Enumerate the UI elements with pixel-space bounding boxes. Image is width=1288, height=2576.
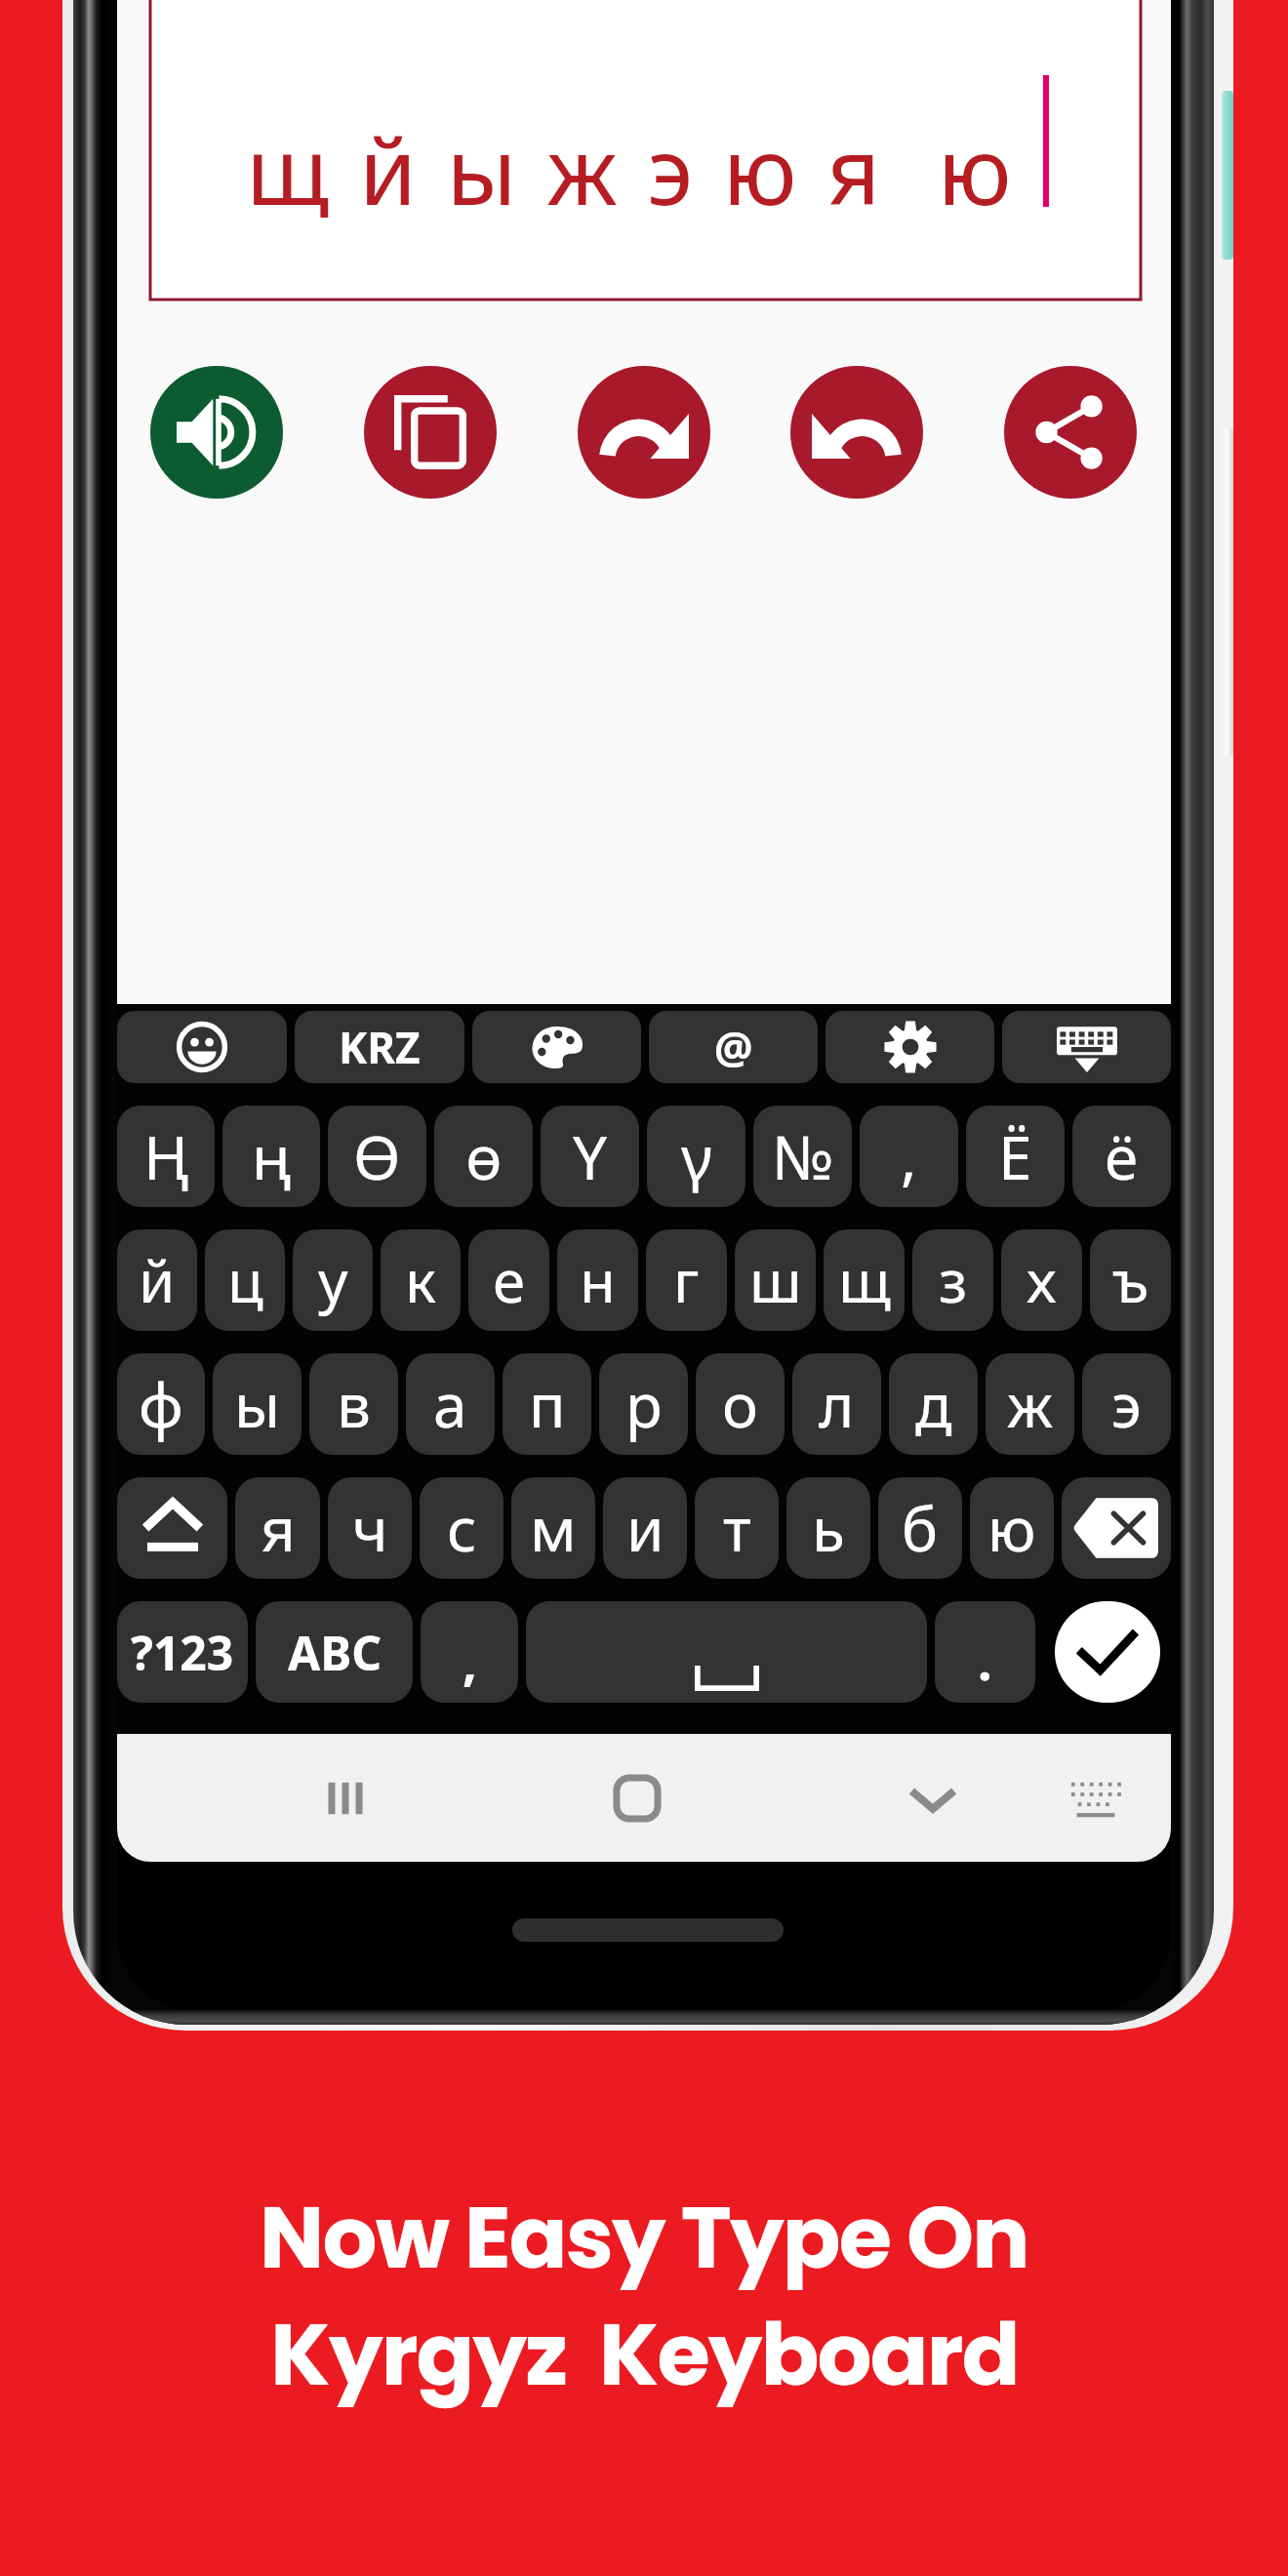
button[interactable]: ь (786, 1477, 870, 1579)
button[interactable]: Share (1004, 366, 1137, 499)
button[interactable]: Ң (117, 1106, 215, 1207)
button[interactable]: , (860, 1106, 958, 1207)
button[interactable]: ɵ (434, 1106, 533, 1207)
button[interactable]: м (511, 1477, 595, 1579)
button[interactable]: ъ (1090, 1229, 1171, 1331)
staticText: и (626, 1487, 664, 1569)
button[interactable]: Home (584, 1738, 691, 1858)
staticText: ю (987, 1487, 1036, 1569)
staticText: KRZ (339, 1018, 421, 1076)
button[interactable]: г (646, 1229, 727, 1331)
button[interactable]: д (889, 1353, 978, 1455)
button[interactable]: ф (117, 1353, 205, 1455)
button[interactable]: ы (213, 1353, 302, 1455)
button[interactable]: х (1001, 1229, 1082, 1331)
button[interactable]: ё (1072, 1106, 1171, 1207)
staticText: о (722, 1363, 758, 1445)
staticText: я (261, 1487, 296, 1569)
staticText: а (433, 1363, 467, 1445)
staticText: р (625, 1363, 663, 1445)
staticText: щ й ы ж э ю я ю (246, 105, 1015, 231)
button[interactable]: ч (328, 1477, 412, 1579)
button[interactable]: ?123 (117, 1601, 248, 1703)
button[interactable]: п (503, 1353, 591, 1455)
button[interactable]: Y (541, 1106, 639, 1207)
button[interactable]: к (381, 1229, 461, 1331)
staticText: й (139, 1240, 176, 1320)
staticText: к (405, 1240, 436, 1320)
button[interactable]: о (696, 1353, 785, 1455)
button[interactable]: з (912, 1229, 993, 1331)
staticText: б (902, 1487, 939, 1569)
button[interactable]: Redo (578, 366, 710, 499)
button[interactable]: н (557, 1229, 638, 1331)
button[interactable]: Change keyboard (1042, 1738, 1149, 1858)
staticText: Ң (143, 1115, 189, 1197)
staticText: Ё (998, 1115, 1032, 1197)
button[interactable]: ң (222, 1106, 320, 1207)
button[interactable]: Hide keyboard (1002, 1011, 1171, 1083)
staticText: л (819, 1363, 855, 1445)
button[interactable]: Enter (1055, 1601, 1160, 1703)
button[interactable]: № (753, 1106, 852, 1207)
button[interactable]: Copy (364, 366, 497, 499)
staticText: Now Easy Type On (260, 2178, 1028, 2298)
button[interactable]: Themes (472, 1011, 641, 1083)
button[interactable]: Backspace (1062, 1477, 1171, 1579)
staticText: ш (749, 1240, 802, 1320)
button[interactable]: ю (970, 1477, 1054, 1579)
staticText: ABC (288, 1621, 382, 1684)
button[interactable]: й (117, 1229, 197, 1331)
button[interactable]: γ (647, 1106, 745, 1207)
staticText: г (673, 1240, 700, 1320)
staticText: . (978, 1626, 992, 1695)
button[interactable]: б (878, 1477, 962, 1579)
staticText: ё (1105, 1115, 1139, 1197)
button[interactable]: Ɵ (328, 1106, 426, 1207)
button[interactable]: щ (824, 1229, 905, 1331)
button[interactable]: Settings (825, 1011, 994, 1083)
button[interactable]: э (1082, 1353, 1171, 1455)
staticText: γ (681, 1115, 712, 1197)
button[interactable]: KRZ (295, 1011, 464, 1083)
button[interactable]: с (420, 1477, 503, 1579)
button[interactable]: р (599, 1353, 688, 1455)
button[interactable]: Shift (117, 1477, 227, 1579)
button[interactable]: ц (205, 1229, 285, 1331)
button[interactable]: . (935, 1601, 1035, 1703)
staticText: Ɵ (353, 1115, 401, 1197)
staticText: д (915, 1363, 952, 1445)
button[interactable]: Speak (150, 366, 283, 499)
button[interactable]: Emoji (117, 1011, 287, 1083)
staticText: т (723, 1487, 751, 1569)
button[interactable]: @ (649, 1011, 818, 1083)
button[interactable]: Ё (966, 1106, 1065, 1207)
staticText: п (529, 1363, 566, 1445)
button[interactable]: у (293, 1229, 373, 1331)
staticText: ы (234, 1363, 281, 1445)
staticText: с (447, 1487, 477, 1569)
button[interactable]: Hide keyboard (879, 1738, 986, 1858)
button[interactable]: я (235, 1477, 320, 1579)
button[interactable]: т (695, 1477, 779, 1579)
button[interactable]: Space (526, 1601, 927, 1703)
button[interactable]: в (309, 1353, 398, 1455)
button[interactable]: ш (735, 1229, 816, 1331)
staticText: ь (812, 1487, 845, 1569)
button[interactable]: а (406, 1353, 495, 1455)
button[interactable]: Undo (790, 366, 923, 499)
staticText: щ (838, 1240, 891, 1320)
staticText: ц (227, 1240, 263, 1320)
button[interactable]: ж (986, 1353, 1074, 1455)
button[interactable]: Recents (292, 1738, 399, 1858)
button[interactable]: , (421, 1601, 518, 1703)
button[interactable]: и (603, 1477, 687, 1579)
button[interactable]: л (792, 1353, 881, 1455)
staticText: № (772, 1115, 834, 1197)
staticText: у (318, 1240, 348, 1320)
other: Power button (1221, 427, 1233, 756)
staticText: е (493, 1240, 526, 1320)
button[interactable]: ABC (256, 1601, 413, 1703)
staticText: х (1026, 1240, 1057, 1320)
button[interactable]: е (468, 1229, 549, 1331)
